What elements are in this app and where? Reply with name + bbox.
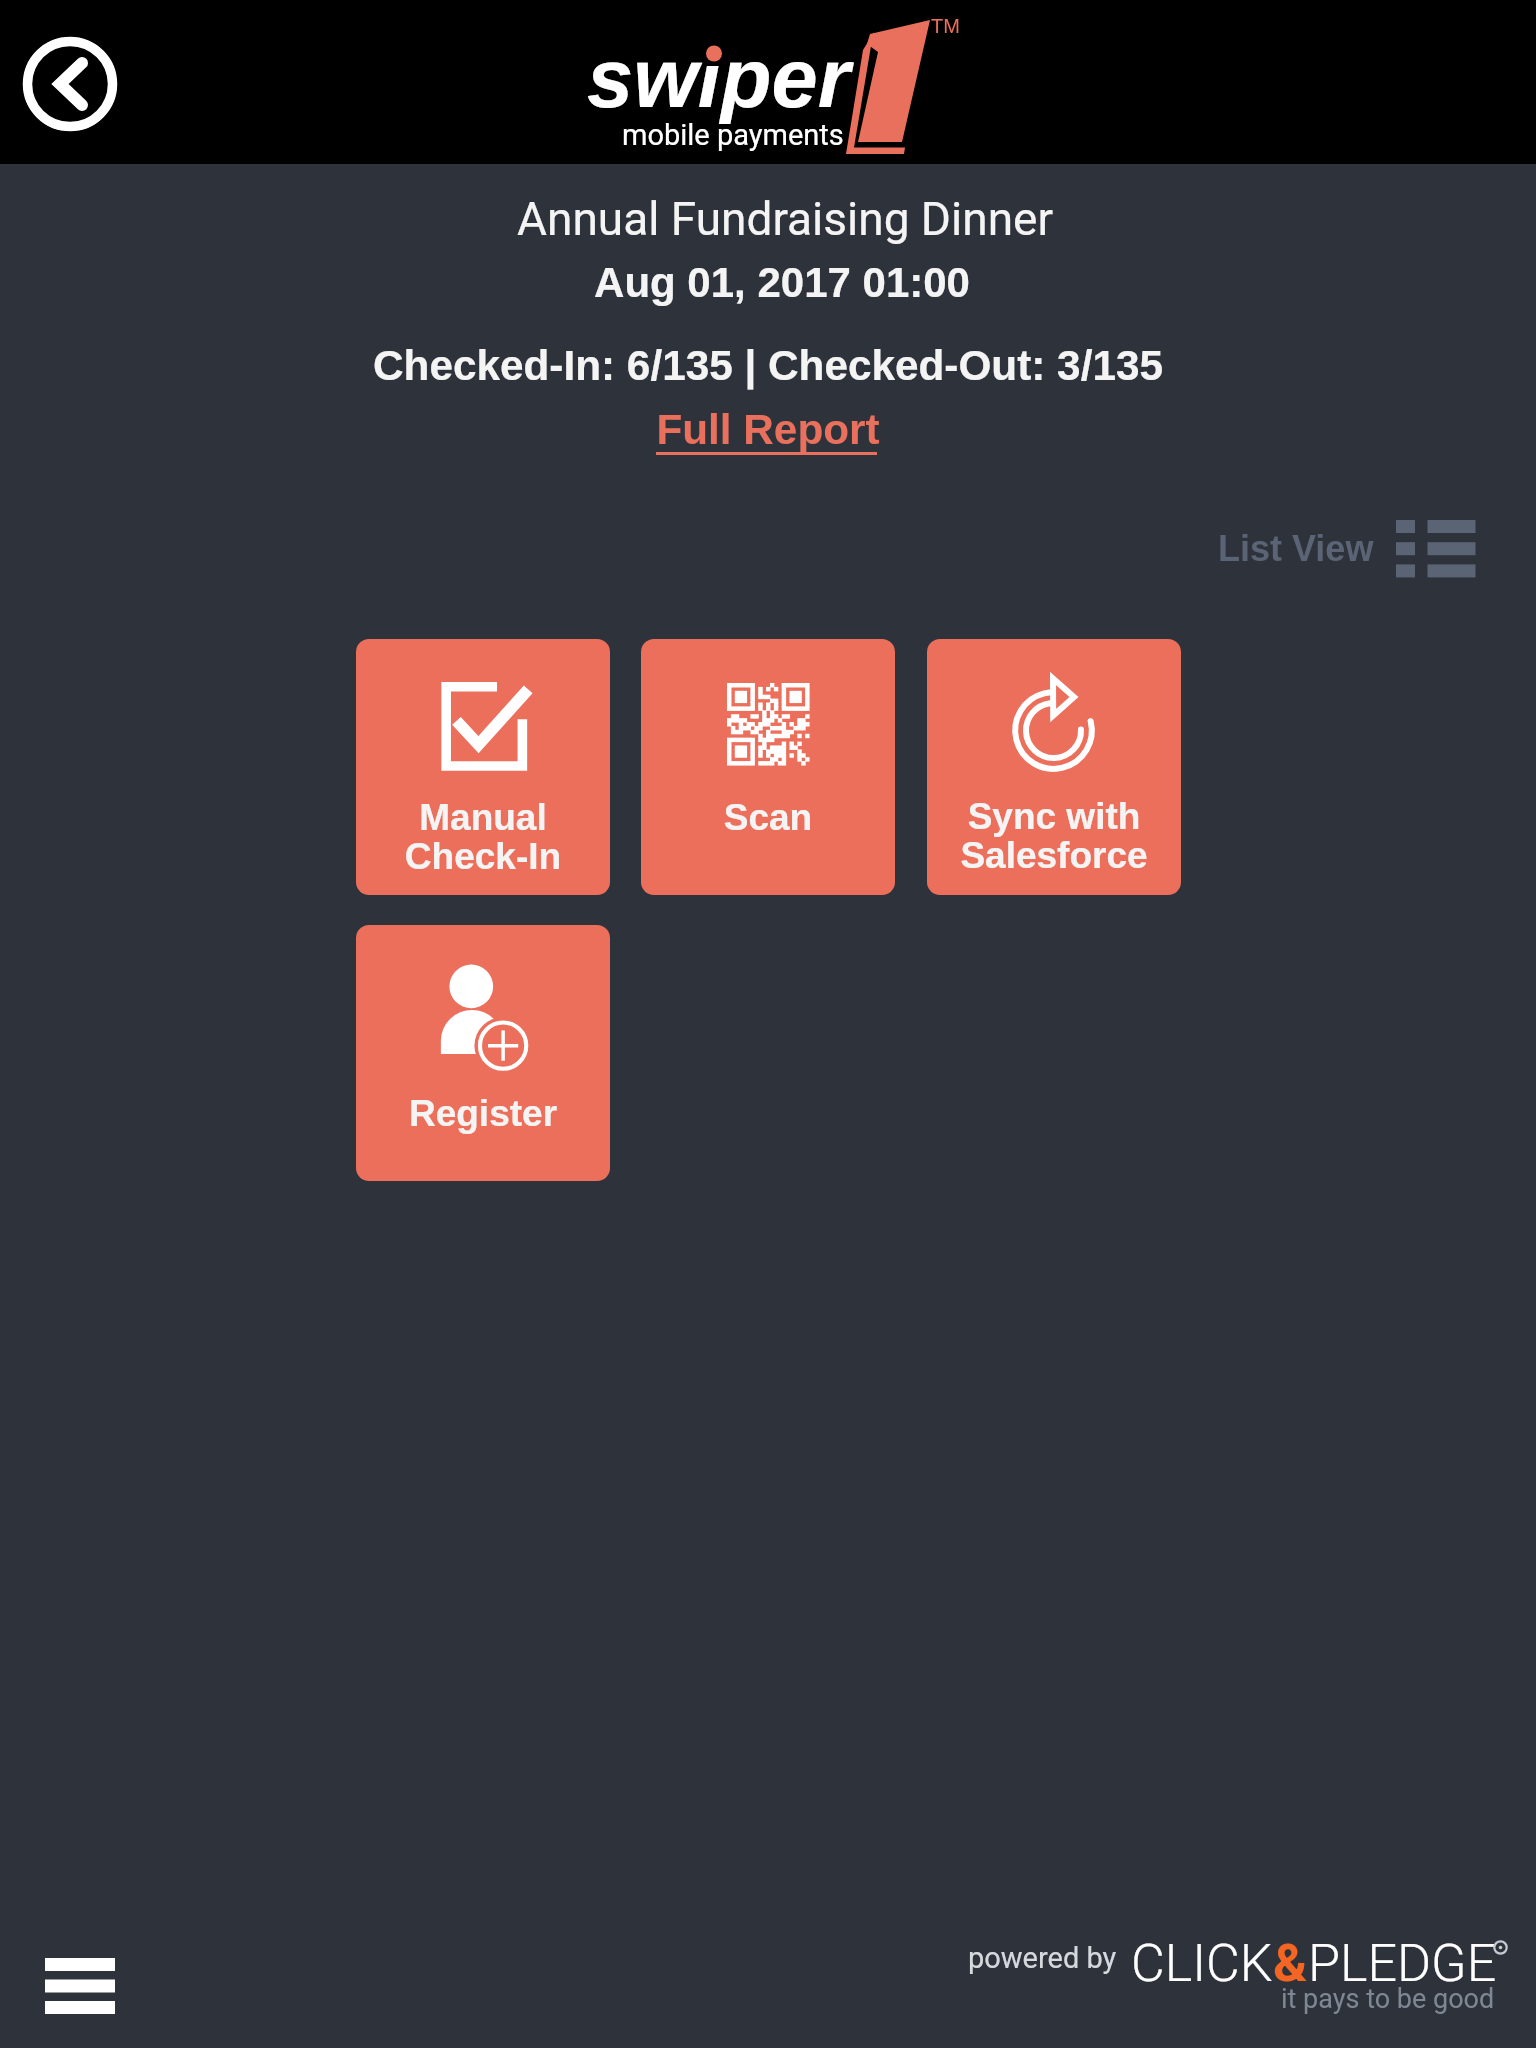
staticText: Scan — [641, 797, 895, 838]
staticText: TM — [931, 15, 960, 37]
staticText: powered by — [968, 1941, 1117, 1975]
staticText: Sync with Salesforce — [927, 796, 1181, 876]
button[interactable]: Sync with Salesforce — [927, 639, 1181, 895]
button[interactable]: Manual Check-In — [356, 639, 610, 895]
staticText: mobile payments — [622, 118, 844, 152]
staticText: it pays to be good — [1281, 1983, 1495, 2015]
button[interactable]: Back — [22, 36, 118, 132]
staticText: PLEDGE — [1308, 1933, 1497, 1994]
staticText: Full Report — [656, 406, 880, 453]
staticText: Register — [356, 1093, 610, 1134]
staticText: Annual Fundraising Dinner — [17, 192, 1536, 246]
button[interactable]: Register — [356, 925, 610, 1181]
button[interactable]: List View — [1218, 517, 1476, 579]
staticText: Checked-In: 6/135 | Checked-Out: 3/135 — [0, 342, 1536, 389]
button[interactable]: Menu — [30, 1940, 130, 2030]
staticText: swiper — [587, 32, 850, 125]
button[interactable]: Scan — [641, 639, 895, 895]
staticText: List View — [1218, 528, 1374, 568]
button[interactable]: Full Report — [656, 406, 880, 456]
staticText: Aug 01, 2017 01:00 — [14, 259, 1536, 306]
staticText: & — [1273, 1933, 1308, 1994]
staticText: Manual Check-In — [356, 797, 610, 877]
staticText: CLICK — [1131, 1933, 1273, 1994]
